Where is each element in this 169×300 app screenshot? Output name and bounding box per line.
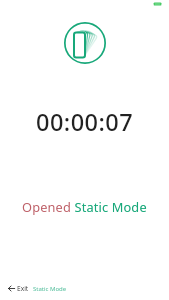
staticText: Exit: [17, 284, 29, 293]
staticText: Opened Static Mode: [22, 198, 147, 215]
staticText: 00:00:07: [36, 106, 134, 138]
staticText: Static Mode: [33, 285, 67, 293]
other: Battery: [153, 2, 162, 6]
button[interactable]: Exit: [6, 282, 69, 295]
